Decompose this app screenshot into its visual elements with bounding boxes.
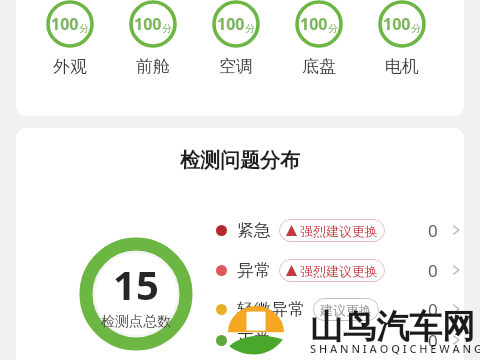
staticText: 电机 <box>385 56 419 77</box>
staticText: 紧急 <box>237 220 271 241</box>
staticText: 100 <box>51 13 79 35</box>
staticText: 强烈建议更换 <box>300 223 378 239</box>
staticText: 山鸟汽车网 <box>310 306 475 348</box>
other: 查看详情 <box>448 222 464 238</box>
button[interactable]: 轻微异常 <box>216 293 464 325</box>
button[interactable]: 100 <box>194 0 277 77</box>
staticText: S H A N N I A O Q I C H E W A N G <box>310 341 480 356</box>
staticText: 分 <box>245 22 255 35</box>
other: 查看详情 <box>448 301 464 317</box>
staticText: 100 <box>134 13 162 35</box>
staticText: 前舱 <box>136 56 170 77</box>
staticText: 分 <box>79 22 89 35</box>
staticText: 100 <box>383 13 411 35</box>
button[interactable]: 正常 <box>216 324 464 356</box>
staticText: 分 <box>328 22 338 35</box>
button[interactable]: 100 <box>111 0 194 77</box>
staticText: 底盘 <box>302 56 336 77</box>
staticText: 检测问题分布 <box>180 148 300 173</box>
other: 查看详情 <box>448 332 464 348</box>
staticText: 分 <box>411 22 421 35</box>
button[interactable]: 100 <box>28 0 111 77</box>
staticText: 正常 <box>237 330 271 351</box>
button[interactable]: 异常 <box>216 254 464 286</box>
staticText: 0 <box>428 259 438 282</box>
button[interactable]: 15 <box>62 220 210 360</box>
staticText: 异常 <box>237 260 271 281</box>
staticText: 15 <box>113 257 159 311</box>
staticText: 100 <box>217 13 245 35</box>
button[interactable]: 100 <box>277 0 360 77</box>
staticText: 强烈建议更换 <box>300 263 378 279</box>
other: 查看详情 <box>448 262 464 278</box>
staticText: 检测点总数 <box>101 313 171 331</box>
staticText: 0 <box>428 219 438 242</box>
staticText: 建议更换 <box>320 302 372 318</box>
staticText: 分 <box>162 22 172 35</box>
button[interactable]: 紧急 <box>216 214 464 246</box>
staticText: 100 <box>300 13 328 35</box>
staticText: 0 <box>428 298 438 321</box>
staticText: 空调 <box>219 56 253 77</box>
button[interactable]: 100 <box>360 0 443 77</box>
staticText: 0 <box>428 329 438 352</box>
staticText: 外观 <box>53 56 87 77</box>
staticText: 轻微异常 <box>237 299 305 320</box>
